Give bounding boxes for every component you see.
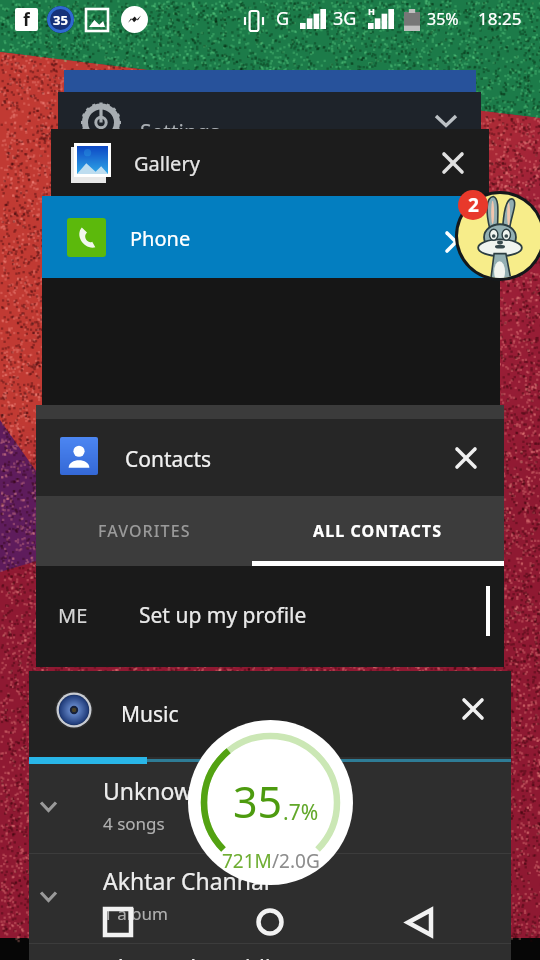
staticText: 18:25	[478, 7, 522, 30]
staticText: ALL CONTACTS	[313, 520, 443, 542]
staticText: 35	[233, 772, 283, 831]
staticText: H	[368, 5, 375, 17]
other: Expand	[435, 114, 457, 129]
button[interactable]: Music	[29, 671, 511, 757]
button[interactable]: Unknown	[29, 764, 511, 853]
staticText: Akhtar Channal	[103, 865, 270, 896]
staticText: 1 album	[103, 902, 168, 925]
staticText: Contacts	[125, 445, 212, 474]
staticText: /2.0G	[272, 848, 320, 874]
button[interactable]: Contacts	[36, 419, 504, 496]
button[interactable]: Close	[449, 441, 483, 475]
staticText: 35%	[427, 8, 459, 30]
staticText: 4 songs	[103, 812, 165, 835]
staticText: Gallery	[134, 150, 200, 177]
staticText: Unknown	[103, 775, 207, 806]
staticText: 35	[53, 11, 68, 29]
staticText: Altamash Faridi	[103, 952, 271, 960]
button[interactable]: Home	[244, 896, 296, 948]
staticText: .7%	[283, 798, 319, 827]
staticText: 3G	[333, 6, 357, 31]
staticText: 721M	[222, 848, 272, 874]
button[interactable]: Close	[439, 225, 473, 259]
button[interactable]: Storage usage	[188, 720, 353, 885]
button[interactable]: Settings	[58, 92, 481, 129]
staticText: FAVORITES	[98, 520, 191, 542]
button[interactable]: Akhtar Channal	[29, 854, 511, 943]
staticText: 2	[468, 192, 479, 218]
button[interactable]: FAVORITES	[36, 496, 252, 566]
button[interactable]: ALL CONTACTS	[252, 496, 504, 566]
staticText: f	[23, 8, 30, 30]
staticText: Phone	[130, 225, 191, 252]
staticText: Music	[121, 700, 179, 729]
button[interactable]: Gallery	[51, 129, 489, 196]
staticText: ME	[58, 602, 88, 629]
staticText: G	[276, 6, 290, 31]
button[interactable]: Close	[436, 146, 470, 180]
button[interactable]: Close	[456, 692, 490, 726]
button[interactable]: Back	[393, 896, 445, 948]
button[interactable]: Phone	[42, 196, 500, 278]
button[interactable]: Chat head	[455, 191, 540, 281]
button[interactable]: ME	[36, 566, 504, 667]
staticText: Settings	[140, 118, 220, 129]
button[interactable]: Recents	[92, 896, 144, 948]
staticText: Set up my profile	[139, 601, 307, 630]
